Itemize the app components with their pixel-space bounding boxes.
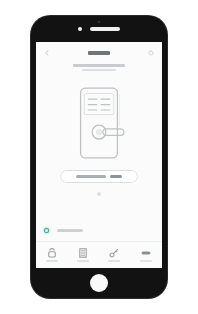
button[interactable] [42, 222, 156, 238]
button[interactable]: Settings [145, 47, 157, 59]
button[interactable]: Devices [67, 242, 98, 268]
button[interactable]: Lock [36, 242, 67, 268]
button[interactable]: More [130, 242, 162, 268]
button[interactable]: Back [41, 47, 53, 59]
button[interactable]: Keys [98, 242, 130, 268]
button[interactable]: Home [90, 274, 108, 292]
button[interactable] [60, 170, 138, 183]
